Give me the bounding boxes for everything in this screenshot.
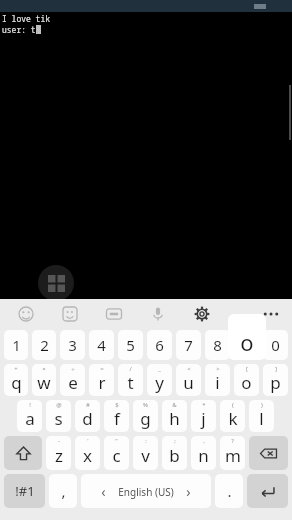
button[interactable]: ‹: [81, 474, 211, 508]
staticText: 1: [12, 335, 21, 355]
staticText: user: t: [2, 24, 36, 35]
staticText: b: [169, 444, 180, 467]
staticText: English (US): [118, 485, 174, 499]
staticText: l: [259, 407, 264, 430]
button[interactable]: *: [191, 400, 216, 432]
button[interactable]: %: [133, 400, 158, 432]
button[interactable]: ,: [191, 436, 216, 470]
staticText: ×: [42, 365, 46, 373]
button[interactable]: 3: [60, 330, 85, 360]
staticText: w: [37, 371, 51, 394]
button[interactable]: Enter: [247, 474, 288, 508]
button[interactable]: .: [215, 474, 243, 508]
button[interactable]: [: [234, 364, 259, 396]
staticText: c: [112, 444, 121, 467]
staticText: k: [228, 407, 238, 430]
button[interactable]: Backspace: [249, 436, 288, 470]
staticText: f: [114, 407, 120, 430]
staticText: ): [261, 401, 263, 409]
button[interactable]: ": [104, 436, 129, 470]
staticText: .: [227, 481, 232, 501]
staticText: q: [11, 371, 22, 394]
staticText: r: [98, 371, 106, 394]
button[interactable]: GIF: [92, 299, 136, 328]
button[interactable]: _: [147, 364, 172, 396]
button[interactable]: ?: [220, 436, 245, 470]
staticText: /: [129, 365, 132, 373]
staticText: 4: [97, 335, 106, 355]
button[interactable]: 0: [263, 330, 288, 360]
staticText: 5: [126, 335, 135, 355]
staticText: 9: [242, 335, 251, 355]
staticText: 0: [271, 335, 280, 355]
staticText: $: [115, 401, 119, 409]
staticText: ÷: [71, 365, 75, 373]
button[interactable]: ): [249, 400, 274, 432]
button[interactable]: !: [17, 400, 42, 432]
button[interactable]: Emoji: [4, 299, 48, 328]
staticText: :: [145, 437, 147, 445]
staticText: v: [141, 444, 150, 467]
button[interactable]: ,: [49, 474, 77, 508]
button[interactable]: Settings: [180, 299, 224, 328]
staticText: d: [82, 407, 93, 430]
staticText: &: [172, 401, 177, 409]
staticText: ,: [203, 437, 205, 445]
button[interactable]: /: [118, 364, 143, 396]
staticText: o: [241, 371, 252, 394]
button[interactable]: @: [46, 400, 71, 432]
button[interactable]: :: [133, 436, 158, 470]
button[interactable]: 7: [176, 330, 201, 360]
button[interactable]: >: [205, 364, 230, 396]
button[interactable]: Voice input: [136, 299, 180, 328]
button[interactable]: ×: [32, 364, 56, 396]
button[interactable]: 9: [234, 330, 259, 360]
staticText: s: [54, 407, 63, 430]
staticText: a: [25, 407, 35, 430]
button[interactable]: 8: [205, 330, 230, 360]
button[interactable]: (: [220, 400, 245, 432]
button[interactable]: Apps grid: [38, 265, 74, 301]
button[interactable]: $: [104, 400, 129, 432]
staticText: <: [187, 365, 191, 373]
button[interactable]: &: [162, 400, 187, 432]
button[interactable]: <: [176, 364, 201, 396]
button[interactable]: +: [4, 364, 28, 396]
staticText: ,: [61, 481, 66, 501]
button[interactable]: ]: [263, 364, 288, 396]
staticText: n: [198, 444, 209, 467]
staticText: 7: [184, 335, 193, 355]
button[interactable]: 5: [118, 330, 143, 360]
button[interactable]: ÷: [60, 364, 85, 396]
button[interactable]: 6: [147, 330, 172, 360]
button[interactable]: 1: [4, 330, 28, 360]
button[interactable]: Stickers: [48, 299, 92, 328]
button[interactable]: Shift: [4, 436, 42, 470]
staticText: ': [87, 437, 89, 445]
button[interactable]: =: [89, 364, 114, 396]
staticText: ›: [186, 482, 191, 501]
staticText: _: [158, 365, 161, 373]
staticText: ;: [174, 437, 176, 445]
button[interactable]: More options: [254, 299, 288, 328]
staticText: u: [183, 371, 194, 394]
staticText: g: [140, 407, 151, 430]
button[interactable]: 2: [32, 330, 56, 360]
staticText: ": [115, 437, 118, 445]
staticText: #: [86, 401, 90, 409]
button[interactable]: #: [75, 400, 100, 432]
staticText: e: [68, 371, 78, 394]
staticText: 2: [40, 335, 49, 355]
button[interactable]: ;: [162, 436, 187, 470]
staticText: (: [232, 401, 234, 409]
button[interactable]: 4: [89, 330, 114, 360]
button[interactable]: ': [75, 436, 100, 470]
button[interactable]: -: [46, 436, 71, 470]
staticText: h: [169, 407, 180, 430]
staticText: ‹: [101, 482, 106, 501]
staticText: ?: [231, 437, 234, 445]
staticText: z: [55, 444, 63, 467]
button[interactable]: !#1: [4, 474, 45, 508]
staticText: y: [155, 371, 164, 394]
staticText: =: [100, 365, 104, 373]
